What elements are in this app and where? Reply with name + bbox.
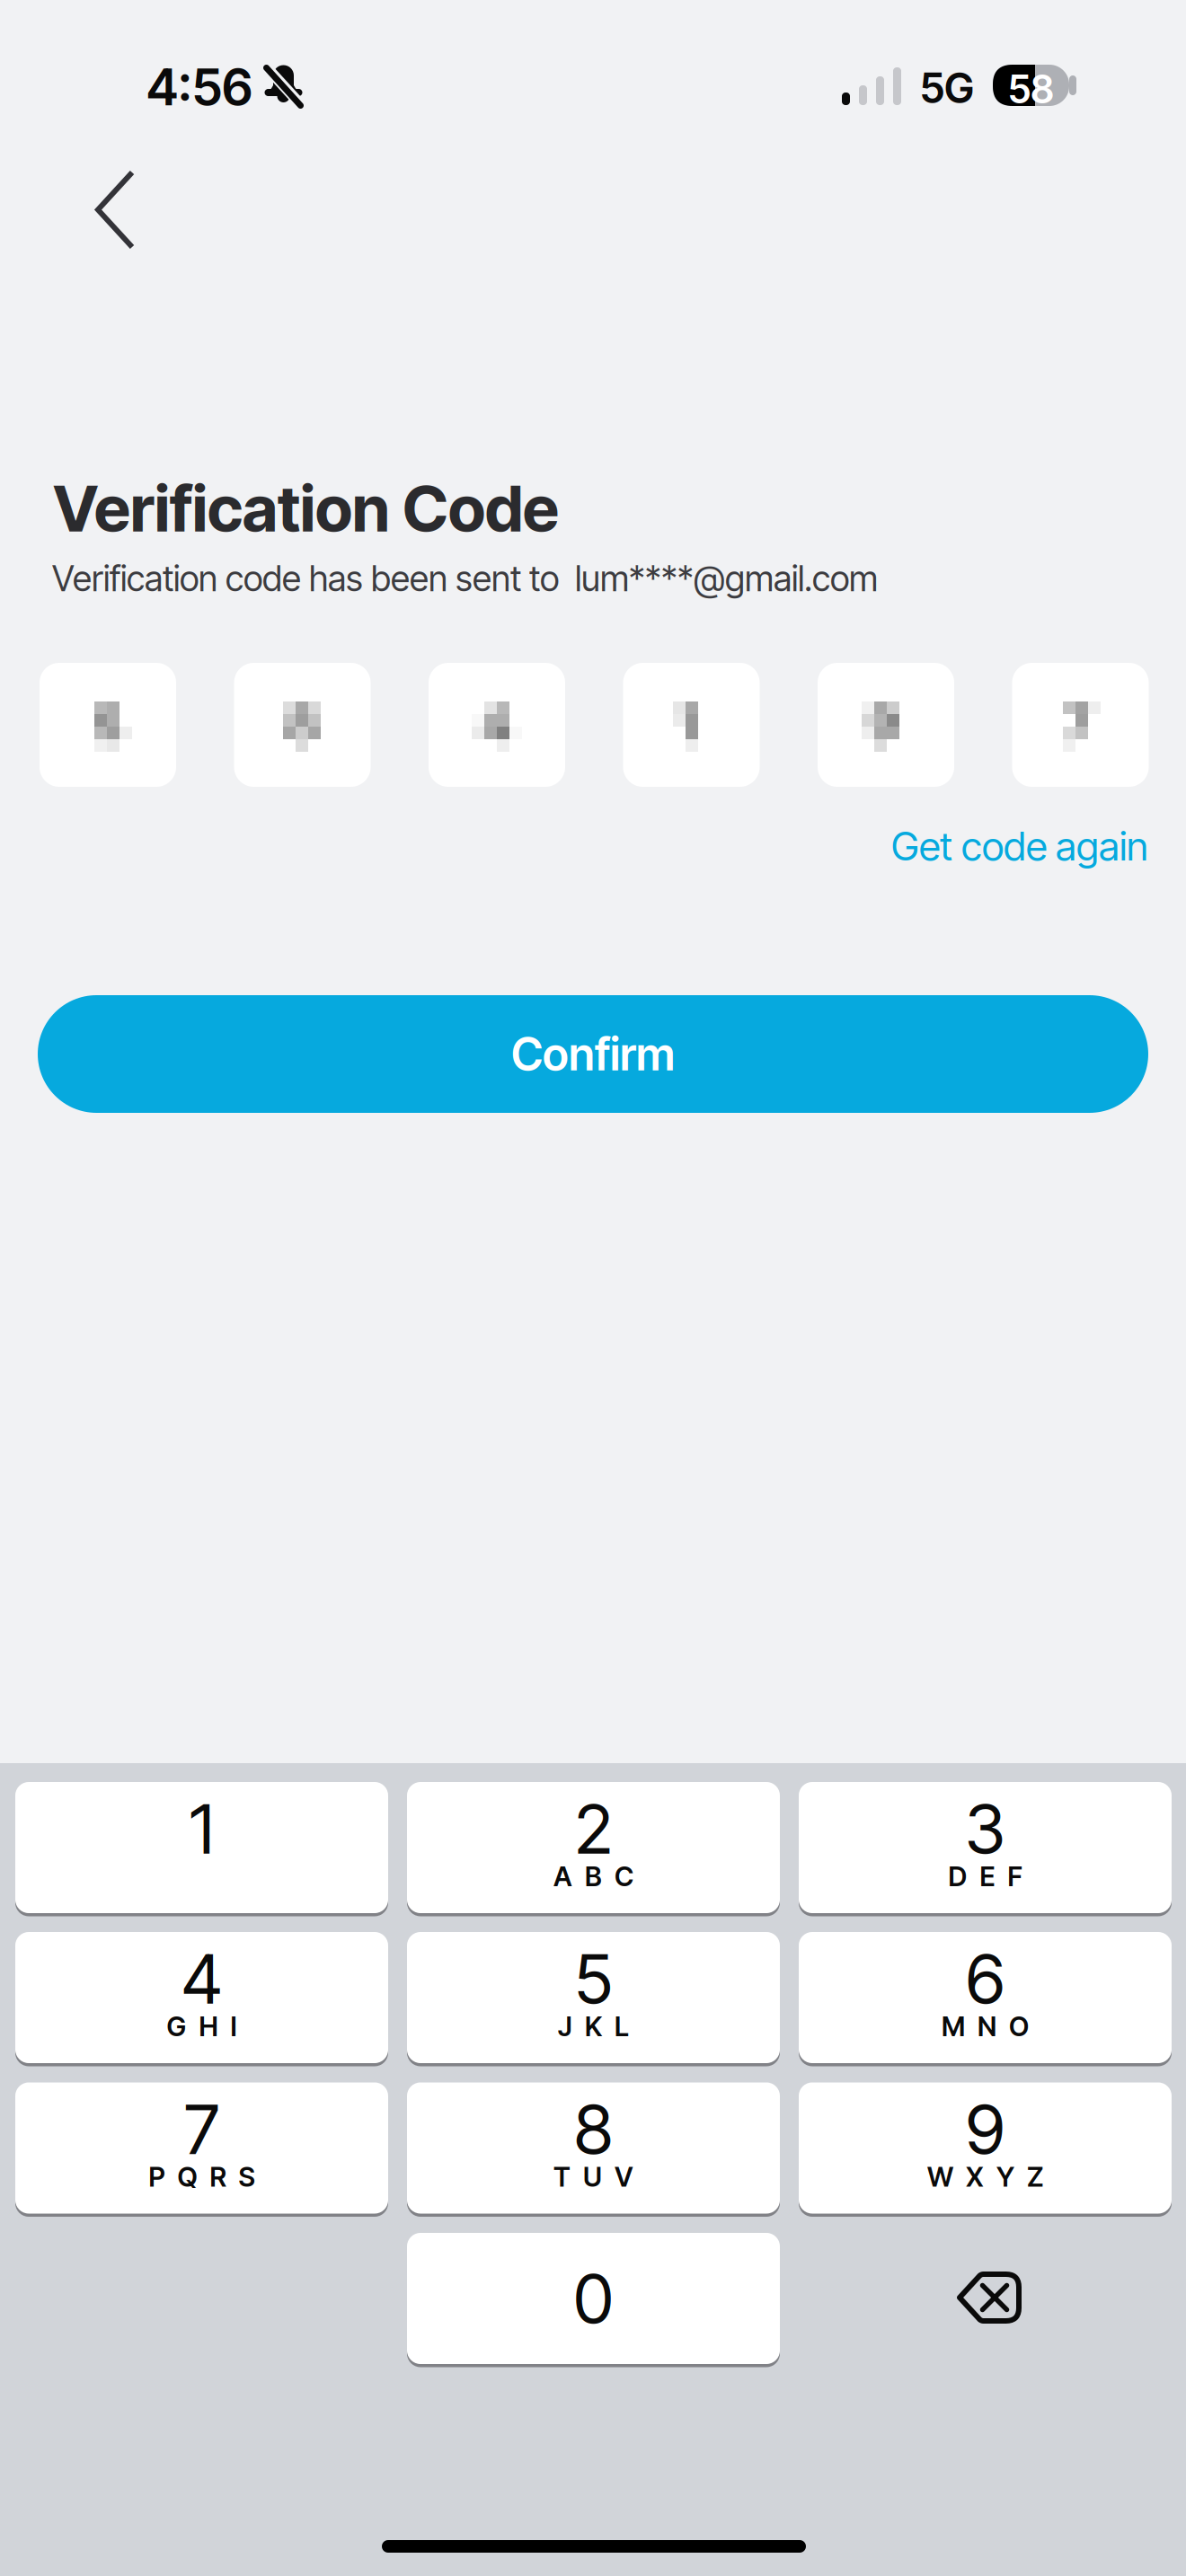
button[interactable]: 0 (407, 2233, 780, 2364)
button[interactable]: 7 (15, 2082, 388, 2214)
staticText: 3 (965, 1787, 1005, 1870)
button[interactable]: Back (95, 170, 135, 250)
button[interactable]: 8 (407, 2082, 780, 2214)
button[interactable]: Confirm (38, 995, 1148, 1113)
staticText: 2 (575, 1787, 612, 1870)
staticText: 58 (1008, 66, 1054, 113)
button[interactable]: 9 (799, 2082, 1172, 2214)
staticText: GHI (167, 2010, 237, 2043)
staticText: Get code again (891, 822, 1148, 870)
button[interactable]: 1 (15, 1782, 388, 1913)
staticText: TUV (553, 2160, 633, 2193)
staticText: Confirm (511, 1027, 675, 1081)
staticText: 7 (184, 2088, 219, 2170)
staticText: 8 (574, 2088, 613, 2170)
staticText: 1 (190, 1787, 214, 1870)
button[interactable]: 3 (799, 1782, 1172, 1913)
staticText: MNO (942, 2010, 1029, 2043)
staticText: WXYZ (927, 2160, 1043, 2193)
staticText: DEF (948, 1860, 1022, 1893)
button[interactable]: 6 (799, 1932, 1172, 2063)
staticText: ABC (553, 1860, 633, 1893)
staticText: 6 (966, 1937, 1005, 2020)
button[interactable]: 2 (407, 1782, 780, 1913)
staticText: 4:56 (146, 57, 252, 118)
staticText: JKL (558, 2010, 629, 2043)
staticText: PQRS (149, 2160, 255, 2193)
staticText: Verification code has been sent to lum**… (52, 557, 878, 600)
button[interactable]: 5 (407, 1932, 780, 2063)
staticText: 9 (966, 2088, 1005, 2170)
staticText: 5 (575, 1937, 612, 2020)
staticText: 5G (920, 63, 974, 113)
staticText: 0 (574, 2257, 613, 2340)
button[interactable]: Delete (956, 2271, 1022, 2324)
button[interactable]: Get code again (891, 822, 1148, 870)
staticText: Verification Code (53, 470, 559, 547)
button[interactable]: 4 (15, 1932, 388, 2063)
staticText: 4 (181, 1937, 222, 2020)
